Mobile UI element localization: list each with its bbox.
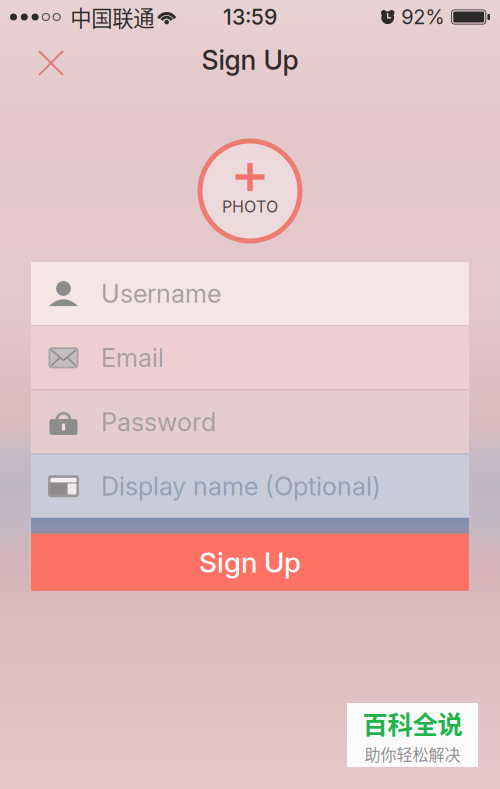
button[interactable]: Add photo	[200, 141, 300, 241]
staticText: Email	[101, 342, 164, 373]
staticText: 助你轻松解决	[364, 742, 460, 765]
button[interactable]: Email	[31, 326, 469, 389]
button[interactable]: Display name (Optional)	[31, 455, 469, 518]
button[interactable]: Password	[31, 390, 469, 454]
staticText: Username	[101, 278, 221, 309]
staticText: 13:59	[223, 4, 277, 30]
button[interactable]: Username	[31, 262, 469, 325]
button[interactable]: Sign Up	[31, 534, 469, 591]
staticText: 中国联通	[70, 2, 154, 32]
staticText: PHOTO	[222, 197, 278, 216]
staticText: 92%	[401, 5, 444, 29]
staticText: Display name (Optional)	[101, 471, 381, 502]
button[interactable]: Close	[28, 37, 74, 83]
staticText: Sign Up	[199, 545, 301, 579]
staticText: 百科全说	[362, 705, 462, 741]
staticText: Sign Up	[201, 44, 298, 76]
staticText: Password	[101, 407, 216, 437]
